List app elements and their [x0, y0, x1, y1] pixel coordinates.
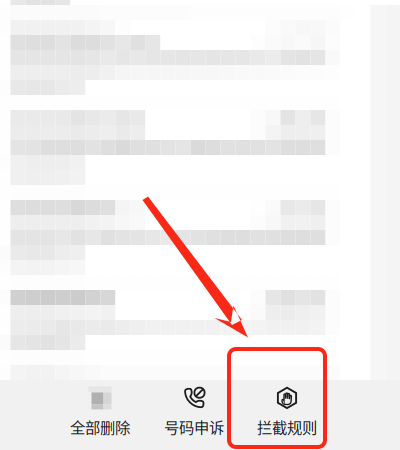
- staticText: 号码申诉: [164, 415, 224, 438]
- button[interactable]: 全部删除: [54, 380, 146, 444]
- staticText: 全部删除: [70, 415, 130, 438]
- button[interactable]: 拦截规则: [241, 380, 333, 444]
- button[interactable]: 号码申诉: [148, 380, 240, 444]
- staticText: 拦截规则: [257, 415, 317, 438]
